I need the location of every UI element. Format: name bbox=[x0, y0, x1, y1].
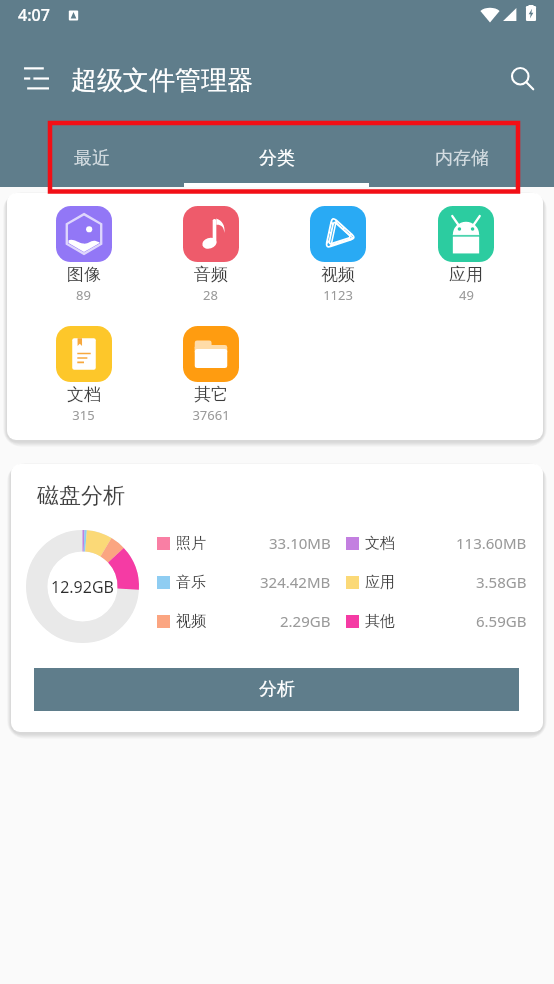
staticText: 图像 bbox=[67, 264, 101, 285]
staticText: 磁盘分析 bbox=[37, 482, 125, 510]
staticText: 文档 bbox=[67, 384, 101, 405]
staticText: 113.60MB bbox=[456, 533, 527, 553]
button[interactable]: 文档 bbox=[20, 326, 147, 421]
staticText: 28 bbox=[203, 286, 218, 304]
staticText: 其它 bbox=[194, 384, 228, 405]
staticText: 37661 bbox=[192, 406, 230, 424]
staticText: 4:07 bbox=[18, 4, 50, 26]
button[interactable]: 内存储 bbox=[369, 111, 554, 187]
button[interactable]: Search bbox=[496, 56, 544, 104]
staticText: 324.42MB bbox=[260, 572, 331, 592]
staticText: 89 bbox=[76, 286, 91, 304]
staticText: 应用 bbox=[365, 573, 395, 592]
staticText: 分析 bbox=[259, 678, 295, 701]
staticText: 6.59GB bbox=[476, 611, 527, 631]
button[interactable]: 应用 bbox=[402, 206, 530, 301]
button[interactable]: 其它 bbox=[147, 326, 275, 421]
button[interactable]: 视频 bbox=[274, 206, 402, 301]
button[interactable]: 分析 bbox=[34, 668, 519, 711]
staticText: 视频 bbox=[321, 264, 355, 285]
staticText: 应用 bbox=[449, 264, 483, 285]
staticText: 超级文件管理器 bbox=[71, 64, 253, 97]
staticText: 音乐 bbox=[176, 573, 206, 592]
staticText: 315 bbox=[72, 406, 95, 424]
button[interactable]: 图像 bbox=[20, 206, 147, 301]
button[interactable]: 音频 bbox=[147, 206, 274, 301]
staticText: 12.92GB bbox=[51, 576, 114, 598]
staticText: 照片 bbox=[176, 534, 206, 553]
staticText: 2.29GB bbox=[280, 611, 331, 631]
staticText: 内存储 bbox=[435, 147, 489, 170]
staticText: 分类 bbox=[259, 147, 295, 170]
staticText: 音频 bbox=[194, 264, 228, 285]
staticText: 3.58GB bbox=[476, 572, 527, 592]
button[interactable]: 分类 bbox=[184, 111, 369, 187]
button[interactable]: Menu bbox=[12, 56, 60, 104]
staticText: 最近 bbox=[74, 147, 110, 170]
staticText: 33.10MB bbox=[269, 533, 331, 553]
staticText: 其他 bbox=[365, 612, 395, 631]
staticText: 文档 bbox=[365, 534, 395, 553]
staticText: 49 bbox=[459, 286, 474, 304]
button[interactable]: 最近 bbox=[0, 111, 184, 187]
staticText: 1123 bbox=[323, 286, 353, 304]
staticText: 视频 bbox=[176, 612, 206, 631]
